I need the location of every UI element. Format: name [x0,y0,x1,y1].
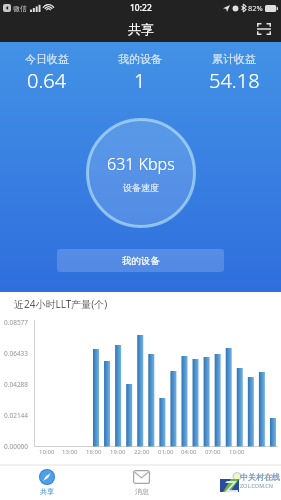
staticText: 消息 [135,487,149,496]
staticText: 04:00 [181,448,197,456]
button[interactable]: 消息 [104,466,178,500]
staticText: 近24小时LLT产量(个) [14,297,108,311]
staticText: 中关村在线 [240,472,280,482]
staticText: 10:22 [130,2,152,14]
staticText: 54.18 [209,67,260,94]
staticText: 631 Kbps [107,153,175,175]
button[interactable]: 共享 [10,466,84,500]
staticText: 10:00 [39,448,55,456]
staticText: 设备速度 [123,182,159,193]
staticText: 22:00 [134,448,150,456]
staticText: 0.04288 [4,380,29,389]
staticText: 今日收益 [25,52,69,66]
staticText: 0.02144 [4,411,29,420]
staticText: 13:00 [62,448,78,456]
staticText: 01:00 [158,448,174,456]
staticText: ZOL.COM.CN [240,482,273,489]
staticText: 10:00 [229,448,245,456]
staticText: 共享 [128,21,154,37]
staticText: 07:00 [205,448,221,456]
staticText: 0.00000 [4,442,29,451]
staticText: 1 [134,67,146,94]
staticText: 16:00 [86,448,102,456]
button[interactable]: Scan QR code [253,18,275,40]
staticText: 累计收益 [212,52,256,66]
button[interactable]: 我的设备 [57,249,224,272]
staticText: 0.08577 [4,318,29,327]
staticText: 0.06433 [4,349,29,358]
staticText: 0.64 [27,67,67,94]
staticText: 微信 [13,4,27,13]
staticText: 我的设备 [122,255,160,267]
button[interactable]: 我的设备 [93,52,187,94]
button[interactable]: 累计收益 [187,52,281,94]
staticText: 共享 [40,487,54,496]
staticText: 我的设备 [118,52,162,66]
button[interactable]: 今日收益 [0,52,93,94]
staticText: 19:00 [110,448,126,456]
staticText: 82% [248,3,263,13]
